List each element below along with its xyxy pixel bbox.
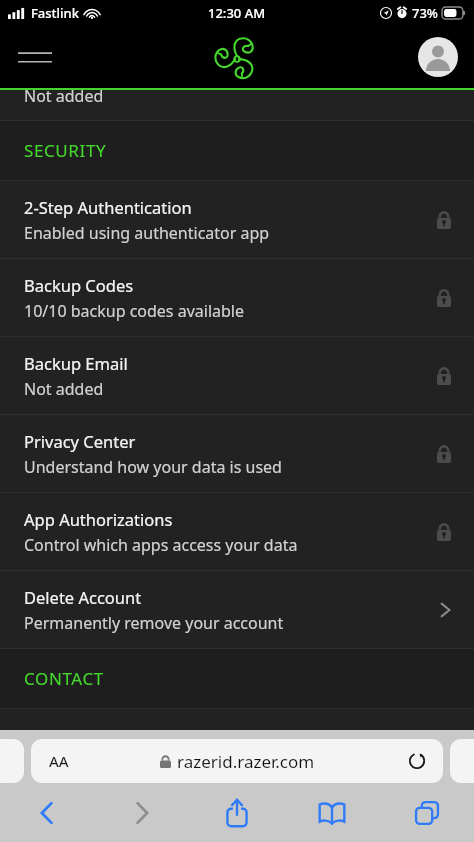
- staticText: Delete Account: [24, 586, 142, 608]
- button[interactable]: Back: [0, 783, 94, 842]
- staticText: CONTACT: [24, 667, 104, 690]
- staticText: SECURITY: [24, 139, 107, 162]
- button[interactable]: Tabs: [379, 783, 474, 842]
- staticText: razerid.razer.com: [177, 750, 315, 773]
- button[interactable]: Razer home: [201, 28, 273, 86]
- staticText: Not added: [24, 85, 104, 107]
- staticText: Fastlink: [31, 4, 80, 22]
- button[interactable]: Address bar: [31, 739, 443, 783]
- button[interactable]: Delete Account: [0, 571, 474, 648]
- staticText: AA: [49, 751, 69, 771]
- button[interactable]: Backup Codes: [0, 259, 474, 336]
- button[interactable]: Bookmarks: [284, 783, 379, 842]
- button[interactable]: Next tab: [450, 739, 474, 783]
- staticText: App Authorizations: [24, 508, 173, 530]
- staticText: 2-Step Authentication: [24, 196, 192, 218]
- staticText: 10/10 backup codes available: [24, 300, 245, 322]
- staticText: Backup Email: [24, 352, 128, 374]
- button[interactable]: App Authorizations: [0, 493, 474, 570]
- staticText: Control which apps access your data: [24, 534, 298, 556]
- staticText: 12:30 AM: [208, 4, 266, 22]
- button[interactable]: Reload: [405, 749, 429, 773]
- staticText: Backup Codes: [24, 274, 134, 296]
- staticText: 73%: [412, 4, 438, 22]
- staticText: Privacy Center: [24, 430, 136, 452]
- button[interactable]: Share: [189, 783, 284, 842]
- staticText: Permanently remove your account: [24, 612, 284, 634]
- button[interactable]: 2-Step Authentication: [0, 181, 474, 258]
- staticText: Not added: [24, 378, 104, 400]
- button[interactable]: Forward: [94, 783, 189, 842]
- button[interactable]: Backup Email: [0, 337, 474, 414]
- button[interactable]: Account: [416, 35, 460, 79]
- button[interactable]: Previous tab: [0, 739, 24, 783]
- staticText: Enabled using authenticator app: [24, 222, 270, 244]
- button[interactable]: Menu: [10, 36, 60, 78]
- button[interactable]: Privacy Center: [0, 415, 474, 492]
- staticText: Understand how your data is used: [24, 456, 282, 478]
